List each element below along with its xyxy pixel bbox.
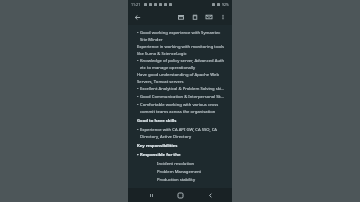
staticText: 92% bbox=[222, 2, 229, 7]
staticText: Good Communication & Interpersonal Skill… bbox=[140, 94, 225, 100]
button[interactable]: Delete bbox=[188, 10, 202, 24]
staticText: Experience with CA API GW, CA SSO, CA Di… bbox=[140, 127, 225, 139]
staticText: Excellent Analytical & Problem Solving s… bbox=[140, 86, 225, 92]
staticText: Have good understanding of Apache Web Se… bbox=[137, 72, 225, 84]
button[interactable]: Recents bbox=[144, 188, 158, 202]
staticText: 11:21 bbox=[131, 2, 141, 7]
button[interactable]: Back bbox=[130, 10, 144, 24]
staticText: • bbox=[137, 58, 139, 64]
staticText: Responsible for the bbox=[140, 152, 181, 158]
staticText: • bbox=[137, 94, 139, 100]
staticText: Good to have skills bbox=[137, 118, 177, 124]
staticText: Production stability bbox=[157, 177, 196, 183]
button[interactable]: Back bbox=[203, 188, 217, 202]
staticText: • bbox=[137, 86, 139, 92]
staticText: Good working experience with Symantec Si… bbox=[140, 30, 225, 42]
staticText: Experience in working with monitoring to… bbox=[137, 44, 225, 56]
staticText: • bbox=[137, 30, 139, 36]
button[interactable]: Mark unread bbox=[202, 10, 216, 24]
staticText: Problem Management bbox=[157, 169, 202, 175]
staticText: Incident resolution bbox=[157, 161, 195, 167]
button[interactable]: Archive bbox=[174, 10, 188, 24]
button[interactable]: More options bbox=[216, 10, 230, 24]
staticText: • bbox=[137, 102, 139, 108]
button[interactable]: Home bbox=[173, 188, 187, 202]
staticText: Comfortable working with various cross c… bbox=[140, 102, 225, 114]
staticText: • bbox=[137, 152, 139, 158]
staticText: • bbox=[137, 127, 139, 133]
staticText: Knowledge of policy server, Advanced Aut… bbox=[140, 58, 225, 70]
staticText: Key responsibilities bbox=[137, 143, 178, 149]
